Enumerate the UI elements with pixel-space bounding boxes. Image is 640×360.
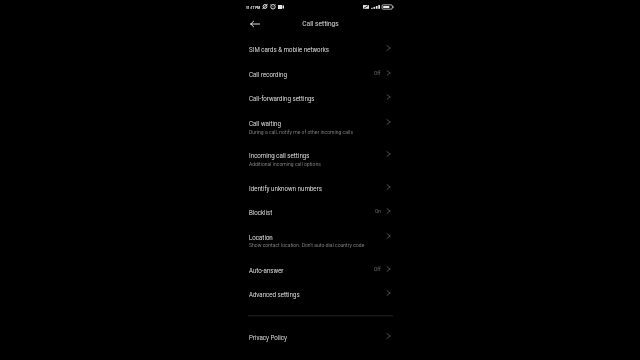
button[interactable]: Auto-answer: [244, 260, 396, 281]
staticText: 11:17 PM: [246, 5, 261, 9]
button[interactable]: Call-forwarding settings: [244, 88, 396, 109]
staticText: Blocklist: [249, 208, 273, 216]
staticText: Advanced settings: [249, 290, 300, 298]
button[interactable]: Call waiting: [244, 113, 396, 140]
staticText: Call-forwarding settings: [249, 94, 315, 102]
button[interactable]: Blocklist: [244, 203, 396, 224]
button[interactable]: Location: [244, 227, 396, 254]
staticText: Show contact location. Don't auto-dial c…: [249, 242, 365, 249]
staticText: During a call, notify me of other incomi…: [249, 129, 353, 136]
button[interactable]: SIM cards & mobile networks: [244, 40, 396, 61]
button[interactable]: Advanced settings: [244, 285, 396, 306]
staticText: SIM cards & mobile networks: [249, 45, 329, 53]
staticText: Identify unknown numbers: [249, 184, 322, 192]
staticText: Additional incoming call options: [249, 161, 321, 168]
staticText: Auto-answer: [249, 266, 284, 274]
staticText: Off: [374, 266, 381, 273]
button[interactable]: Privacy Policy: [244, 328, 396, 349]
button[interactable]: Call recording: [244, 64, 396, 85]
button[interactable]: Incoming call settings: [244, 145, 396, 172]
staticText: Incoming call settings: [249, 151, 310, 159]
staticText: Call waiting: [249, 119, 281, 127]
staticText: Call settings: [302, 19, 339, 28]
staticText: On: [375, 208, 381, 215]
staticText: Location: [249, 233, 273, 241]
staticText: Privacy Policy: [249, 333, 287, 341]
button[interactable]: Back: [248, 17, 262, 31]
staticText: Off: [374, 70, 381, 77]
staticText: Call recording: [249, 70, 287, 78]
button[interactable]: Identify unknown numbers: [244, 178, 396, 199]
